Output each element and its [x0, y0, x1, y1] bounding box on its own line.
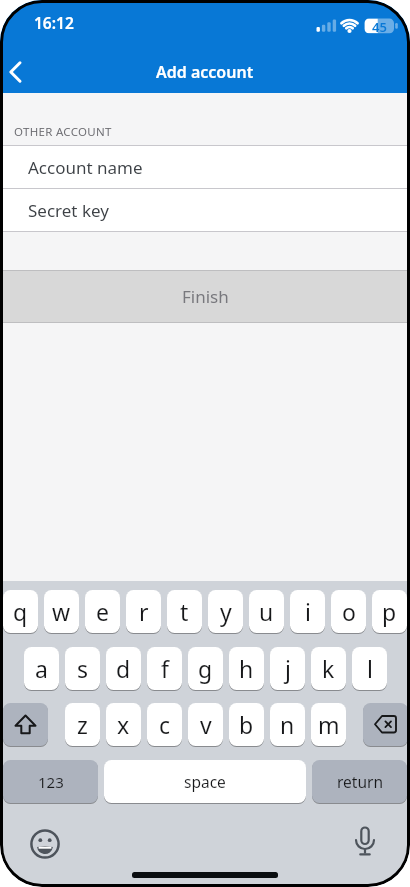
staticText: n: [280, 709, 295, 740]
button[interactable]: Secret key: [0, 189, 410, 231]
staticText: l: [367, 653, 373, 684]
staticText: j: [285, 653, 291, 684]
button[interactable]: n: [270, 703, 305, 746]
staticText: f: [161, 653, 169, 684]
staticText: m: [318, 709, 340, 740]
button[interactable]: h: [229, 647, 264, 690]
staticText: r: [139, 596, 149, 627]
staticText: e: [96, 596, 109, 627]
staticText: s: [77, 653, 89, 684]
button[interactable]: l: [352, 647, 387, 690]
button[interactable]: return: [312, 760, 407, 803]
staticText: h: [239, 653, 254, 684]
staticText: 16:12: [34, 12, 74, 33]
staticText: u: [259, 596, 274, 627]
button[interactable]: r: [126, 590, 161, 633]
button[interactable]: [363, 703, 408, 746]
staticText: Add account: [156, 61, 254, 83]
staticText: a: [35, 653, 48, 684]
button[interactable]: d: [106, 647, 141, 690]
button[interactable]: f: [147, 647, 182, 690]
staticText: Account name: [28, 156, 143, 179]
button[interactable]: [346, 822, 383, 863]
button[interactable]: space: [104, 760, 306, 803]
staticText: Secret key: [28, 199, 109, 222]
button[interactable]: u: [249, 590, 284, 633]
staticText: t: [180, 596, 189, 627]
staticText: q: [13, 596, 28, 627]
button[interactable]: e: [85, 590, 120, 633]
staticText: o: [342, 596, 356, 627]
staticText: OTHER ACCOUNT: [14, 124, 112, 140]
staticText: return: [337, 771, 383, 792]
button[interactable]: a: [24, 647, 59, 690]
button[interactable]: c: [147, 703, 182, 746]
button[interactable]: [26, 825, 64, 863]
staticText: w: [52, 596, 71, 627]
button[interactable]: [0, 56, 30, 88]
button[interactable]: s: [65, 647, 100, 690]
button[interactable]: i: [290, 590, 325, 633]
staticText: b: [239, 709, 254, 740]
staticText: 123: [38, 772, 64, 792]
button[interactable]: t: [167, 590, 202, 633]
staticText: space: [184, 771, 226, 792]
button[interactable]: z: [65, 703, 100, 746]
staticText: Finish: [182, 285, 229, 308]
button[interactable]: j: [270, 647, 305, 690]
button[interactable]: v: [188, 703, 223, 746]
button[interactable]: 123: [3, 760, 98, 803]
staticText: i: [305, 596, 311, 627]
button[interactable]: y: [208, 590, 243, 633]
staticText: c: [159, 709, 171, 740]
staticText: 45: [372, 18, 387, 34]
staticText: g: [198, 653, 213, 684]
button[interactable]: o: [331, 590, 366, 633]
button[interactable]: q: [3, 590, 38, 633]
staticText: y: [220, 596, 232, 627]
button[interactable]: x: [106, 703, 141, 746]
staticText: z: [77, 709, 88, 740]
button[interactable]: [3, 703, 48, 746]
button[interactable]: p: [372, 590, 407, 633]
staticText: k: [322, 653, 335, 684]
button[interactable]: g: [188, 647, 223, 690]
button[interactable]: k: [311, 647, 346, 690]
staticText: d: [116, 653, 131, 684]
staticText: x: [117, 709, 130, 740]
staticText: v: [200, 709, 212, 740]
button[interactable]: b: [229, 703, 264, 746]
staticText: p: [382, 596, 397, 627]
button[interactable]: m: [311, 703, 346, 746]
button[interactable]: Finish: [0, 271, 410, 322]
button[interactable]: w: [44, 590, 79, 633]
button[interactable]: Account name: [0, 146, 410, 188]
